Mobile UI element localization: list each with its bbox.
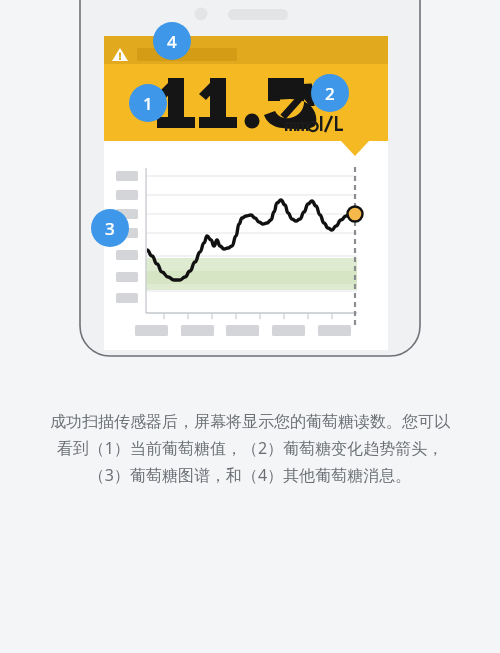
- button[interactable]: Marker 3: [91, 209, 129, 247]
- button[interactable]: Marker 4: [153, 22, 191, 60]
- staticText: 2: [325, 82, 335, 105]
- staticText: 成功扫描传感器后，屏幕将显示您的葡萄糖读数。您可以看到（1）当前葡萄糖值，（2）…: [46, 412, 454, 486]
- staticText: 4: [167, 30, 177, 53]
- staticText: 3: [105, 217, 115, 240]
- button[interactable]: Marker 2: [311, 74, 349, 112]
- button[interactable]: Marker 1: [129, 84, 167, 122]
- staticText: 1: [143, 92, 153, 115]
